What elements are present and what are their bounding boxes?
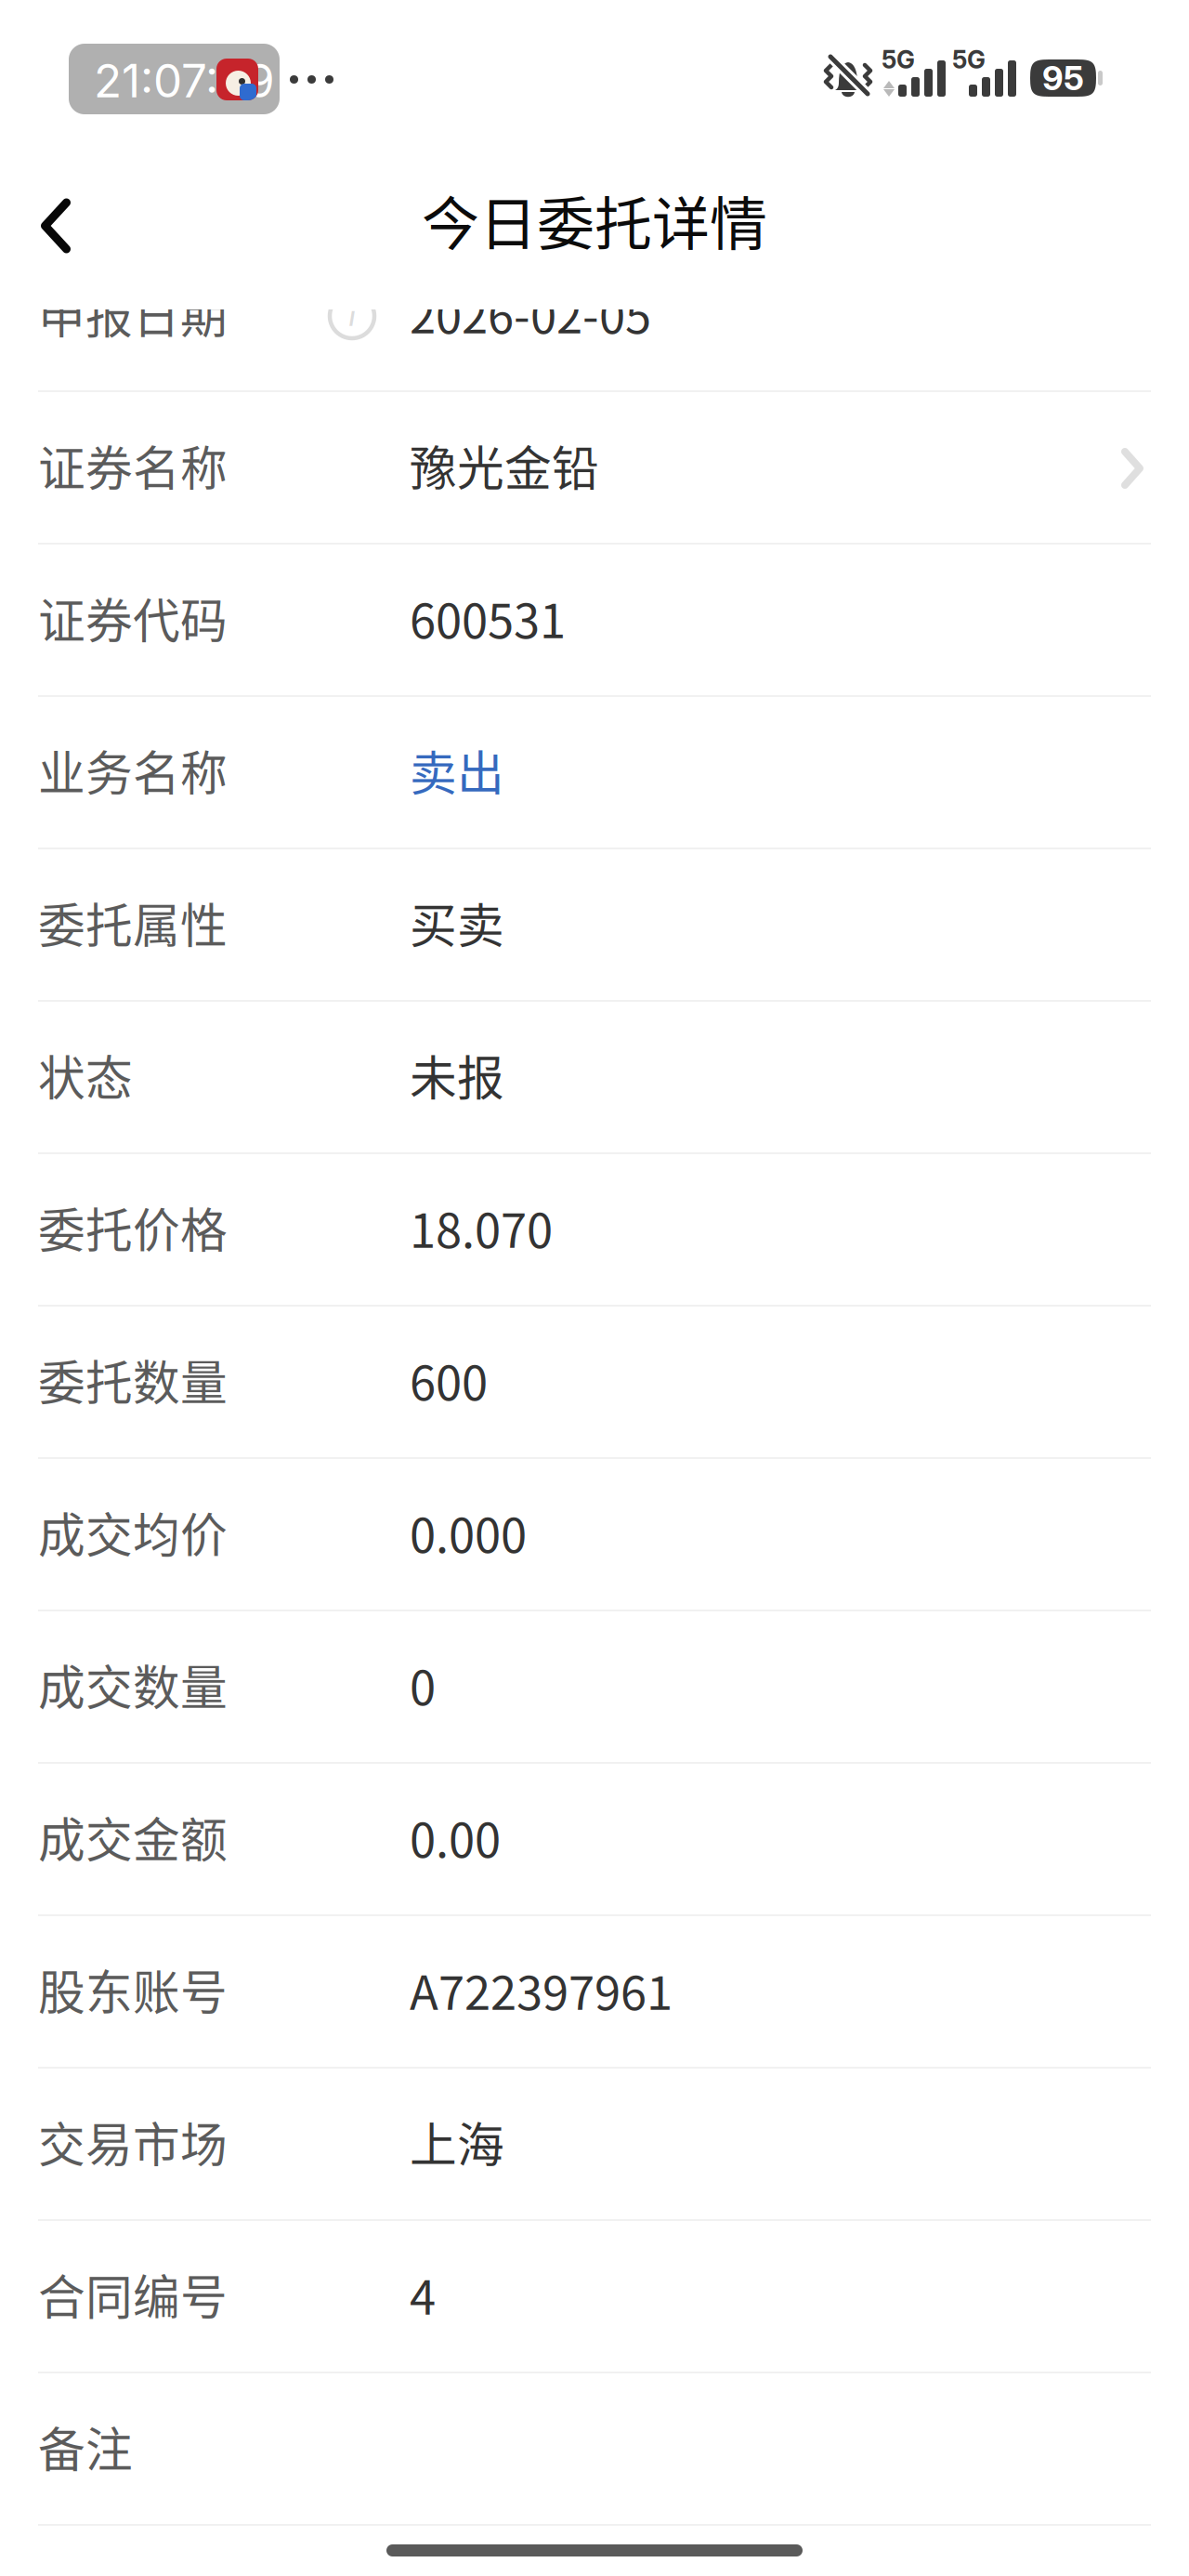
staticText: 业务名称 (38, 736, 228, 804)
staticText: 未报 (410, 1041, 504, 1109)
staticText: 0.00 (410, 1803, 501, 1871)
staticText: 证券代码 (38, 584, 228, 652)
button[interactable]: 证券代码 (0, 545, 1189, 697)
button[interactable]: 业务名称 (0, 697, 1189, 849)
button[interactable]: 委托价格 (0, 1154, 1189, 1307)
button[interactable]: 证券名称 (0, 392, 1189, 545)
button[interactable]: 股东账号 (0, 1916, 1189, 2069)
button[interactable]: 合同编号 (0, 2221, 1189, 2373)
staticText: 证券名称 (38, 431, 228, 499)
staticText: 申报日期 (38, 279, 228, 347)
staticText: 委托属性 (38, 888, 228, 957)
staticText: 股东账号 (38, 1955, 228, 2023)
staticText: 合同编号 (38, 2260, 228, 2328)
staticText: 2026-02-05 (410, 279, 651, 347)
button[interactable]: 备注 (0, 2373, 1189, 2526)
staticText: 委托数量 (38, 1346, 228, 1414)
staticText: 状态 (38, 1041, 133, 1109)
staticText: 4 (410, 2260, 436, 2328)
button[interactable]: 成交金额 (0, 1764, 1189, 1916)
button[interactable]: Back (6, 176, 106, 276)
staticText: 95 (1042, 58, 1084, 98)
button[interactable]: 交易市场 (0, 2069, 1189, 2221)
staticText: A722397961 (410, 1955, 673, 2023)
staticText: 5G (882, 45, 915, 75)
staticText: 成交金额 (38, 1803, 228, 1871)
staticText: 成交均价 (38, 1498, 228, 1566)
staticText: 备注 (38, 2412, 133, 2481)
staticText: 交易市场 (38, 2108, 228, 2176)
staticText: 0 (410, 1650, 436, 1719)
button[interactable]: 状态 (0, 1002, 1189, 1154)
staticText: 上海 (410, 2108, 504, 2176)
button[interactable]: 委托属性 (0, 849, 1189, 1002)
staticText: 18.070 (410, 1193, 553, 1261)
staticText: 0.000 (410, 1498, 527, 1566)
staticText: 买卖 (410, 888, 504, 957)
staticText: 600531 (410, 584, 566, 652)
staticText: 5G (952, 45, 986, 75)
button[interactable]: 成交数量 (0, 1611, 1189, 1764)
staticText: 21:07:59 (94, 53, 275, 108)
staticText: 豫光金铅 (410, 431, 599, 499)
staticText: 成交数量 (38, 1650, 228, 1719)
staticText: 委托价格 (38, 1193, 228, 1261)
staticText: 600 (410, 1346, 488, 1414)
staticText: 今日委托详情 (422, 178, 767, 262)
staticText: 卖出 (410, 736, 504, 804)
button[interactable]: 委托数量 (0, 1307, 1189, 1459)
staticText: i (349, 300, 355, 333)
button[interactable]: 成交均价 (0, 1459, 1189, 1611)
